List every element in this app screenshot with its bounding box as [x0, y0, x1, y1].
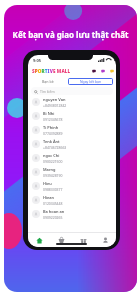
staticText: nguyen Van [43, 97, 66, 102]
staticText: Ngay kết bạn [80, 79, 102, 84]
staticText: Hieu [43, 181, 52, 186]
button[interactable]: Ti Phinh [32, 123, 112, 137]
staticText: Kết bạn và giao lưu thật chất [4, 29, 137, 40]
button[interactable]: Hieu [32, 179, 112, 193]
staticText: Bi Nhi [43, 111, 55, 116]
button[interactable]: Home [28, 233, 50, 247]
staticText: Hiean [43, 195, 55, 200]
button[interactable]: Bi Nhi [32, 109, 112, 123]
staticText: +84746728663 [43, 145, 67, 150]
staticText: 0120345448 [43, 201, 63, 206]
staticText: 0912345678 [43, 117, 63, 122]
button[interactable]: Marng [32, 165, 112, 179]
staticText: 0988330377 [43, 187, 63, 192]
staticText: 0774392889 [43, 131, 63, 136]
button[interactable]: Gifts [72, 233, 94, 247]
staticText: ngoc Chi [43, 153, 60, 158]
staticText: 0900221500 [43, 159, 63, 164]
button[interactable]: Bạn bè [31, 76, 64, 87]
button[interactable]: Messages [91, 68, 96, 73]
staticText: SPORTIVE MALL [32, 68, 71, 74]
staticText: Ti Phinh [43, 125, 59, 130]
button[interactable]: Profile [94, 233, 116, 247]
button[interactable]: Tìm kiếm [31, 87, 113, 95]
button[interactable]: Notifications [100, 68, 105, 73]
staticText: Marng [43, 167, 56, 172]
button[interactable]: Ngay kết bạn [68, 78, 113, 85]
button[interactable]: Cart [109, 68, 114, 73]
button[interactable]: Shop [50, 233, 72, 247]
staticText: Bạn bè [42, 79, 54, 84]
button[interactable]: nguyen Van [32, 95, 112, 109]
staticText: Tenk Ânt [43, 139, 60, 144]
staticText: 0939428190 [43, 173, 63, 178]
button[interactable]: Ba hoan an [32, 207, 112, 221]
button[interactable]: Tenk Ânt [32, 137, 112, 151]
staticText: 9:05 [33, 58, 41, 63]
staticText: +84938012842 [43, 103, 67, 108]
staticText: Ba hoan an [43, 209, 65, 214]
button[interactable]: Hiean [32, 193, 112, 207]
staticText: Tìm kiếm [40, 89, 55, 94]
button[interactable]: ngoc Chi [32, 151, 112, 165]
staticText: 0909220265 [43, 215, 63, 220]
